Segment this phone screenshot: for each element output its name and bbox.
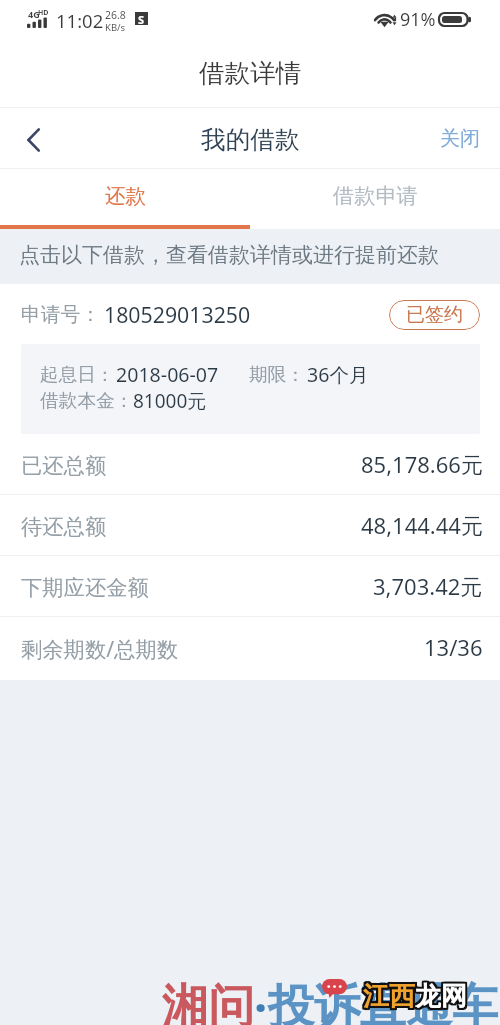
staticText: 龙: [414, 978, 440, 1010]
staticText: 180529013250: [104, 300, 251, 329]
staticText: 点击以下借款，查看借款详情或进行提前还款: [19, 242, 439, 268]
staticText: 直: [360, 978, 406, 1025]
staticText: 西: [387, 980, 413, 1012]
staticText: 网: [439, 979, 465, 1011]
staticText: 下期应还金额: [21, 574, 149, 601]
staticText: 湘: [162, 978, 208, 1025]
staticText: 江: [365, 978, 391, 1010]
button[interactable]: 借款申请: [250, 169, 500, 225]
staticText: 西: [387, 978, 413, 1010]
staticText: 龙: [413, 978, 439, 1010]
staticText: 网: [442, 978, 468, 1010]
staticText: 36个月: [307, 361, 369, 388]
staticText: 西: [390, 978, 416, 1010]
button[interactable]: 起息日：: [21, 344, 480, 434]
staticText: 待还总额: [21, 513, 107, 540]
staticText: 江: [361, 982, 387, 1014]
staticText: 江: [365, 979, 391, 1011]
staticText: HD: [38, 8, 49, 18]
staticText: 网: [443, 982, 469, 1014]
staticText: 已还总额: [21, 452, 107, 479]
staticText: 网: [443, 980, 469, 1012]
staticText: 江: [363, 978, 389, 1010]
button[interactable]: 下期应还金额: [0, 556, 500, 616]
staticText: 还款: [105, 183, 146, 209]
staticText: 龙: [416, 978, 442, 1010]
staticText: 龙: [414, 982, 440, 1014]
staticText: 网: [439, 981, 465, 1013]
staticText: 江: [362, 982, 388, 1014]
staticText: 龙: [413, 980, 439, 1012]
staticText: 江: [365, 981, 391, 1013]
staticText: 龙: [417, 979, 443, 1011]
staticText: 网: [443, 979, 469, 1011]
staticText: 江: [361, 979, 387, 1011]
staticText: 西: [389, 978, 415, 1010]
button[interactable]: 待还总额: [0, 495, 500, 555]
staticText: S: [138, 12, 145, 25]
staticText: 龙: [417, 982, 443, 1014]
staticText: 问: [208, 978, 254, 1025]
staticText: ·: [254, 975, 268, 1025]
staticText: 西: [391, 982, 417, 1014]
staticText: 江: [365, 982, 391, 1014]
staticText: 龙: [417, 981, 443, 1013]
button[interactable]: Back: [0, 108, 62, 168]
staticText: 西: [391, 981, 417, 1013]
staticText: 11:02: [56, 8, 104, 33]
staticText: 网: [441, 980, 467, 1012]
staticText: 网: [440, 982, 466, 1014]
staticText: 江: [364, 982, 390, 1014]
staticText: 91%: [400, 7, 436, 32]
staticText: 借款申请: [333, 183, 418, 210]
staticText: 网: [439, 982, 465, 1014]
staticText: 龙: [417, 978, 443, 1010]
button[interactable]: 关闭: [418, 110, 500, 167]
staticText: 48,144.44元: [361, 510, 483, 540]
staticText: 26.8: [105, 8, 126, 22]
staticText: 网: [439, 978, 465, 1010]
staticText: 西: [387, 982, 413, 1014]
staticText: 龙: [415, 980, 441, 1012]
staticText: 西: [387, 979, 413, 1011]
staticText: 西: [390, 982, 416, 1014]
staticText: 起息日：: [40, 363, 115, 386]
staticText: 我的借款: [201, 124, 300, 155]
staticText: 网: [441, 982, 467, 1014]
button[interactable]: 剩余期数/总期数: [0, 617, 500, 677]
staticText: 诉: [314, 978, 360, 1025]
staticText: 西: [388, 982, 414, 1014]
staticText: 龙: [415, 978, 441, 1010]
staticText: 西: [389, 980, 415, 1012]
staticText: 2018-06-07: [116, 361, 219, 388]
staticText: KB/s: [105, 21, 126, 34]
staticText: 3,703.42元: [373, 571, 483, 601]
staticText: 江: [365, 980, 391, 1012]
staticText: 西: [389, 982, 415, 1014]
staticText: 龙: [413, 979, 439, 1011]
staticText: 车: [452, 978, 498, 1025]
staticText: 网: [439, 980, 465, 1012]
staticText: 江: [362, 978, 388, 1010]
staticText: 通: [406, 978, 452, 1025]
staticText: 借款本金：: [40, 389, 134, 413]
staticText: 剩余期数/总期数: [21, 634, 179, 663]
button[interactable]: 还款: [0, 169, 250, 225]
staticText: 江: [363, 980, 389, 1012]
staticText: 网: [440, 978, 466, 1010]
staticText: 已签约: [406, 303, 463, 327]
staticText: 龙: [416, 982, 442, 1014]
staticText: 13/36: [424, 632, 483, 662]
staticText: 西: [391, 980, 417, 1012]
button[interactable]: 已还总额: [0, 434, 500, 494]
staticText: 龙: [415, 982, 441, 1014]
staticText: 关闭: [440, 126, 480, 151]
staticText: 西: [391, 979, 417, 1011]
button[interactable]: 已签约: [389, 300, 480, 330]
staticText: 申请号：: [21, 302, 101, 327]
staticText: 西: [388, 978, 414, 1010]
staticText: 西: [391, 978, 417, 1010]
staticText: 4G: [28, 8, 40, 20]
staticText: 网: [443, 978, 469, 1010]
staticText: 网: [442, 982, 468, 1014]
